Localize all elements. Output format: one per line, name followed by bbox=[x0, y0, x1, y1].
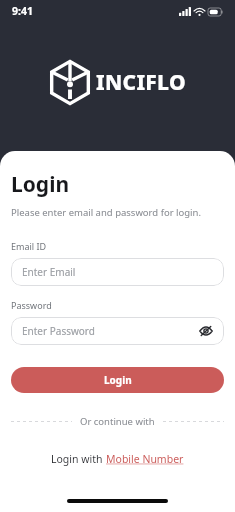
staticText: Enter Email bbox=[22, 265, 76, 279]
staticText: Login with bbox=[51, 452, 106, 466]
button[interactable]: Enter Password bbox=[11, 317, 224, 345]
button[interactable]: Login bbox=[11, 367, 224, 393]
staticText: Enter Password bbox=[22, 324, 95, 338]
staticText: INCIFLO bbox=[96, 68, 186, 97]
staticText: Please enter email and password for logi… bbox=[11, 206, 201, 219]
staticText: Password bbox=[11, 299, 52, 311]
staticText: Or continue with bbox=[80, 415, 155, 428]
button[interactable]: Enter Email bbox=[11, 258, 224, 286]
staticText: Login bbox=[11, 170, 70, 199]
staticText: Login bbox=[104, 373, 132, 387]
staticText: 9:41 bbox=[12, 4, 33, 18]
button[interactable]: Show password bbox=[199, 324, 213, 338]
staticText: Email ID bbox=[11, 240, 47, 252]
button[interactable]: Mobile Number bbox=[106, 452, 184, 466]
staticText: Mobile Number bbox=[106, 452, 184, 466]
